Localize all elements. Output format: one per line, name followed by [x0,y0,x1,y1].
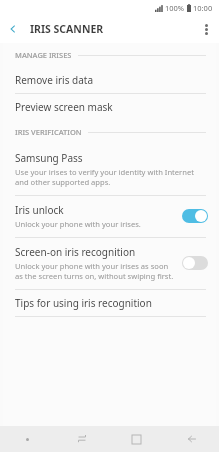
staticText: Preview screen mask [15,100,113,114]
staticText: Use your irises to verify your identity … [15,167,202,187]
staticText: Iris unlock [15,203,64,217]
staticText: 10:00 [193,3,213,13]
staticText: 100% [165,3,185,13]
button[interactable]: Home [109,426,164,452]
button[interactable]: On [182,209,208,223]
button[interactable]: Recents [54,426,109,452]
staticText: Samsung Pass [15,151,83,165]
staticText: Remove iris data [15,73,94,87]
staticText: Unlock your phone with your irises. [15,219,141,229]
staticText: IRIS SCANNER [30,22,104,36]
button[interactable]: Samsung Pass [3,144,216,195]
button[interactable]: Preview screen mask [3,94,216,120]
button[interactable]: Off [182,256,208,270]
button[interactable]: Screen-on iris recognition [3,238,216,289]
button[interactable]: Back [164,426,219,452]
button[interactable]: Remove iris data [3,67,216,93]
staticText: MANAGE IRISES [15,50,72,60]
staticText: Tips for using iris recognition [15,296,152,310]
button[interactable]: More options [193,16,219,42]
button[interactable]: Tips for using iris recognition [3,290,216,316]
staticText: IRIS VERIFICATION [15,127,82,137]
staticText: Screen-on iris recognition [15,245,136,259]
button[interactable]: Back [0,16,26,42]
button[interactable]: Iris unlock [3,196,216,237]
staticText: Unlock your phone with your irises as so… [15,261,176,281]
